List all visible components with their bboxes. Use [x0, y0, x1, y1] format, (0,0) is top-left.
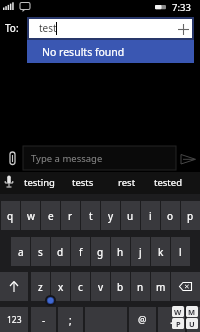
staticText: g	[97, 245, 104, 259]
staticText: ;	[69, 313, 72, 327]
staticText: s	[38, 245, 43, 259]
staticText: U	[189, 319, 195, 329]
button[interactable]: k	[151, 237, 170, 266]
button[interactable]: d	[51, 237, 70, 266]
staticText: u	[127, 209, 134, 223]
button[interactable]: tested	[154, 176, 182, 189]
button[interactable]: u	[121, 201, 140, 230]
staticText: rest	[118, 176, 136, 189]
button[interactable]	[171, 272, 200, 301]
button[interactable]	[8, 151, 18, 167]
button[interactable]: @	[129, 307, 156, 332]
button[interactable]: n	[131, 272, 150, 301]
button[interactable]: x	[51, 272, 70, 301]
button[interactable]: 123	[0, 307, 28, 332]
staticText: o	[167, 209, 174, 223]
button[interactable]: Type a message	[23, 146, 176, 170]
staticText: c	[78, 280, 83, 294]
button[interactable]: t	[81, 201, 100, 230]
staticText: test	[39, 21, 57, 35]
staticText: P	[176, 319, 181, 329]
staticText: m	[156, 280, 166, 294]
staticText: x	[58, 280, 64, 294]
staticText: a	[18, 245, 24, 259]
staticText: To:	[5, 21, 19, 35]
staticText: @	[138, 313, 147, 326]
staticText: y	[108, 209, 114, 223]
staticText: e	[48, 209, 54, 223]
staticText: t	[89, 209, 93, 223]
button[interactable]: No results found	[27, 40, 194, 63]
button[interactable]: b	[111, 272, 130, 301]
button[interactable]: w	[21, 201, 40, 230]
button[interactable]	[187, 307, 200, 332]
button[interactable]: y	[101, 201, 120, 230]
staticText: Type a message	[31, 152, 103, 165]
staticText: 123	[7, 314, 22, 326]
staticText: tested	[154, 176, 182, 189]
button[interactable]: g	[91, 237, 110, 266]
button[interactable]: -	[31, 307, 56, 332]
staticText: .	[170, 313, 173, 327]
staticText: M	[188, 307, 196, 317]
staticText: f	[79, 245, 83, 259]
button[interactable]: r	[61, 201, 80, 230]
staticText: testing	[24, 176, 55, 189]
staticText: w	[27, 209, 35, 223]
button[interactable]: test	[29, 19, 192, 38]
button[interactable]: f	[71, 237, 90, 266]
staticText: k	[158, 245, 164, 259]
button[interactable]	[177, 23, 190, 36]
button[interactable]: c	[71, 272, 90, 301]
staticText: v	[98, 280, 104, 294]
staticText: No results found	[42, 45, 125, 59]
staticText: q	[7, 209, 14, 223]
button[interactable]: o	[161, 201, 180, 230]
staticText: -	[42, 313, 46, 327]
button[interactable]: i	[141, 201, 160, 230]
staticText: r	[68, 209, 73, 223]
staticText: j	[139, 245, 142, 259]
button[interactable]: .	[158, 307, 185, 332]
button[interactable]: tests	[72, 176, 94, 189]
button[interactable]: z	[31, 272, 50, 301]
staticText: d	[57, 245, 64, 259]
staticText: tests	[72, 176, 94, 189]
button[interactable]	[0, 272, 28, 301]
staticText: 7:33	[172, 1, 191, 14]
staticText: l	[179, 245, 182, 259]
button[interactable]: j	[131, 237, 150, 266]
button[interactable]: rest	[118, 176, 136, 189]
button[interactable]: e	[41, 201, 60, 230]
staticText: h	[117, 245, 124, 259]
button[interactable]: s	[31, 237, 50, 266]
staticText: p	[187, 209, 194, 223]
button[interactable]: ;	[58, 307, 83, 332]
staticText: z	[38, 280, 43, 294]
button[interactable]	[179, 152, 197, 165]
button[interactable]: q	[1, 201, 20, 230]
staticText: n	[137, 280, 144, 294]
button[interactable]	[4, 175, 14, 191]
button[interactable]: p	[181, 201, 200, 230]
button[interactable]: testing	[24, 176, 55, 189]
button[interactable]: a	[11, 237, 30, 266]
button[interactable]: h	[111, 237, 130, 266]
staticText: i	[149, 209, 152, 223]
staticText: b	[117, 280, 124, 294]
button[interactable]: v	[91, 272, 110, 301]
button[interactable]: l	[171, 237, 190, 266]
button[interactable]: m	[151, 272, 170, 301]
staticText: W	[174, 307, 182, 317]
